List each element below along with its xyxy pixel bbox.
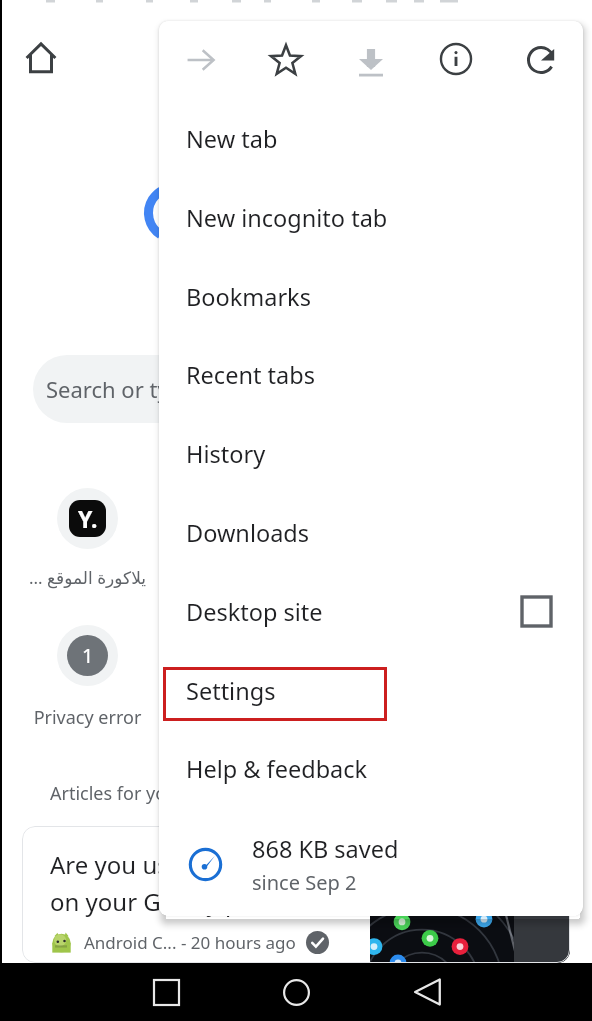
staticText: Desktop site xyxy=(186,596,323,628)
staticText: since Sep 2 xyxy=(252,869,357,896)
staticText: on your Galaxy phone? xyxy=(50,885,308,918)
staticText: 1 xyxy=(82,642,94,669)
button[interactable]: Settings xyxy=(159,651,583,730)
button[interactable]: Forward xyxy=(174,33,228,87)
button[interactable]: Bookmark xyxy=(259,32,313,86)
button[interactable]: Help & feedback xyxy=(159,729,583,808)
button[interactable]: Recent tabs xyxy=(159,335,583,414)
staticText: Y. xyxy=(78,503,98,534)
button[interactable]: New incognito tab xyxy=(159,178,583,257)
button[interactable]: Home xyxy=(269,965,323,1019)
button[interactable]: Search or type web address xyxy=(33,355,333,423)
button[interactable]: Page info xyxy=(429,32,483,86)
staticText: Articles for you xyxy=(50,781,178,806)
staticText: Are you using these apps xyxy=(50,848,334,881)
button[interactable]: History xyxy=(159,414,583,493)
button[interactable]: Recent apps xyxy=(139,965,193,1019)
button[interactable]: Desktop site xyxy=(159,572,583,651)
button[interactable]: Bookmarks xyxy=(159,257,583,336)
staticText: 868 KB saved xyxy=(252,833,399,865)
staticText: Settings xyxy=(186,675,276,707)
button[interactable]: Download xyxy=(344,33,398,87)
staticText: New tab xyxy=(186,123,278,155)
staticText: Android C... - 20 hours ago xyxy=(84,931,296,954)
button[interactable]: 868 KB saved xyxy=(159,821,583,908)
staticText: Privacy error xyxy=(19,705,156,730)
button[interactable]: Home xyxy=(19,36,63,80)
staticText: History xyxy=(186,438,266,470)
staticText: Bookmarks xyxy=(186,281,311,313)
button[interactable]: Y. xyxy=(19,488,156,589)
staticText: Help & feedback xyxy=(186,753,368,785)
staticText: Search or type web address xyxy=(46,374,331,404)
staticText: New incognito tab xyxy=(186,202,388,234)
button[interactable]: 1 xyxy=(19,625,156,730)
button[interactable]: Back xyxy=(401,965,455,1019)
button[interactable]: Downloads xyxy=(159,493,583,572)
button[interactable]: New tab xyxy=(159,99,583,178)
button[interactable]: Reload xyxy=(514,33,568,87)
staticText: Recent tabs xyxy=(186,359,315,391)
staticText: Downloads xyxy=(186,517,310,549)
staticText: ... يلاكورة الموقع xyxy=(19,566,156,589)
button[interactable]: Are you using these apps xyxy=(22,826,570,963)
